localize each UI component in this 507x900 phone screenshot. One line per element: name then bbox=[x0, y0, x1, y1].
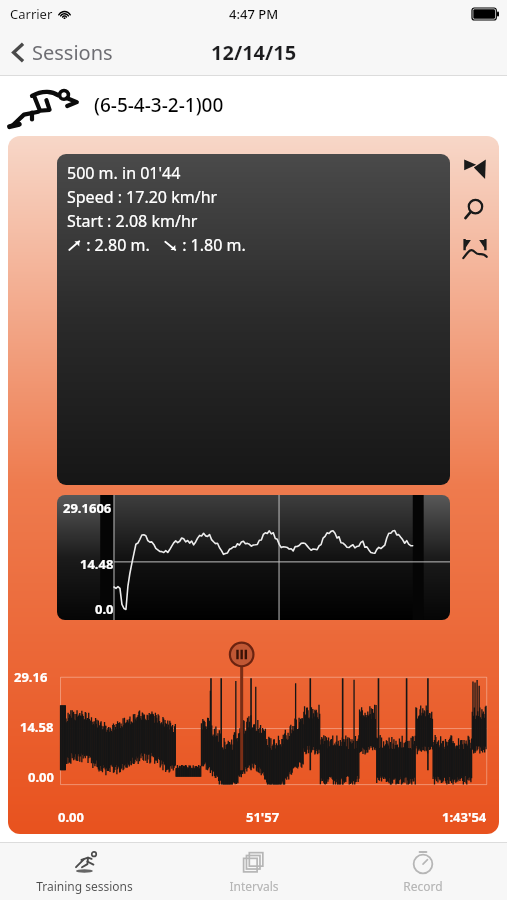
staticText: 4:47 PM bbox=[229, 5, 279, 23]
staticText: 500 m. in 01'44 bbox=[67, 162, 181, 184]
staticText: (6-5-4-3-2-1)00 bbox=[94, 92, 224, 118]
staticText: Start : 2.08 km/hr bbox=[67, 210, 198, 232]
button[interactable]: Zoom bbox=[456, 190, 494, 228]
staticText: 12/14/15 bbox=[211, 39, 297, 66]
staticText: Sessions bbox=[32, 39, 113, 66]
button[interactable]: Training sessions bbox=[0, 843, 169, 900]
button[interactable]: Intervals bbox=[169, 843, 338, 900]
staticText: : 1.80 m. bbox=[178, 234, 246, 256]
button[interactable]: 29.1606 bbox=[57, 495, 450, 620]
staticText: 0.0 bbox=[95, 600, 114, 618]
staticText: 0.00 bbox=[58, 808, 84, 826]
staticText: 29.16 bbox=[14, 668, 48, 686]
staticText: 29.1606 bbox=[63, 499, 112, 517]
staticText: : 2.80 m. bbox=[82, 234, 163, 256]
button[interactable]: 500 m. in 01'44 bbox=[57, 154, 450, 485]
staticText: 0.00 bbox=[28, 768, 54, 786]
staticText: Speed : 17.20 km/hr bbox=[67, 186, 218, 208]
staticText: 14.58 bbox=[20, 718, 54, 736]
staticText: Record bbox=[403, 878, 443, 894]
staticText: 14.48 bbox=[80, 555, 114, 573]
button[interactable]: Pan bbox=[456, 150, 494, 188]
staticText: Training sessions bbox=[36, 878, 133, 894]
button[interactable]: 29.16 bbox=[8, 644, 499, 834]
button[interactable]: Record bbox=[338, 843, 507, 900]
button[interactable]: Markers bbox=[456, 230, 494, 268]
staticText: Carrier bbox=[10, 5, 53, 23]
staticText: 1:43'54 bbox=[442, 808, 487, 826]
staticText: 51'57 bbox=[246, 808, 280, 826]
button[interactable]: Sessions bbox=[0, 33, 123, 72]
staticText: Intervals bbox=[229, 878, 279, 894]
